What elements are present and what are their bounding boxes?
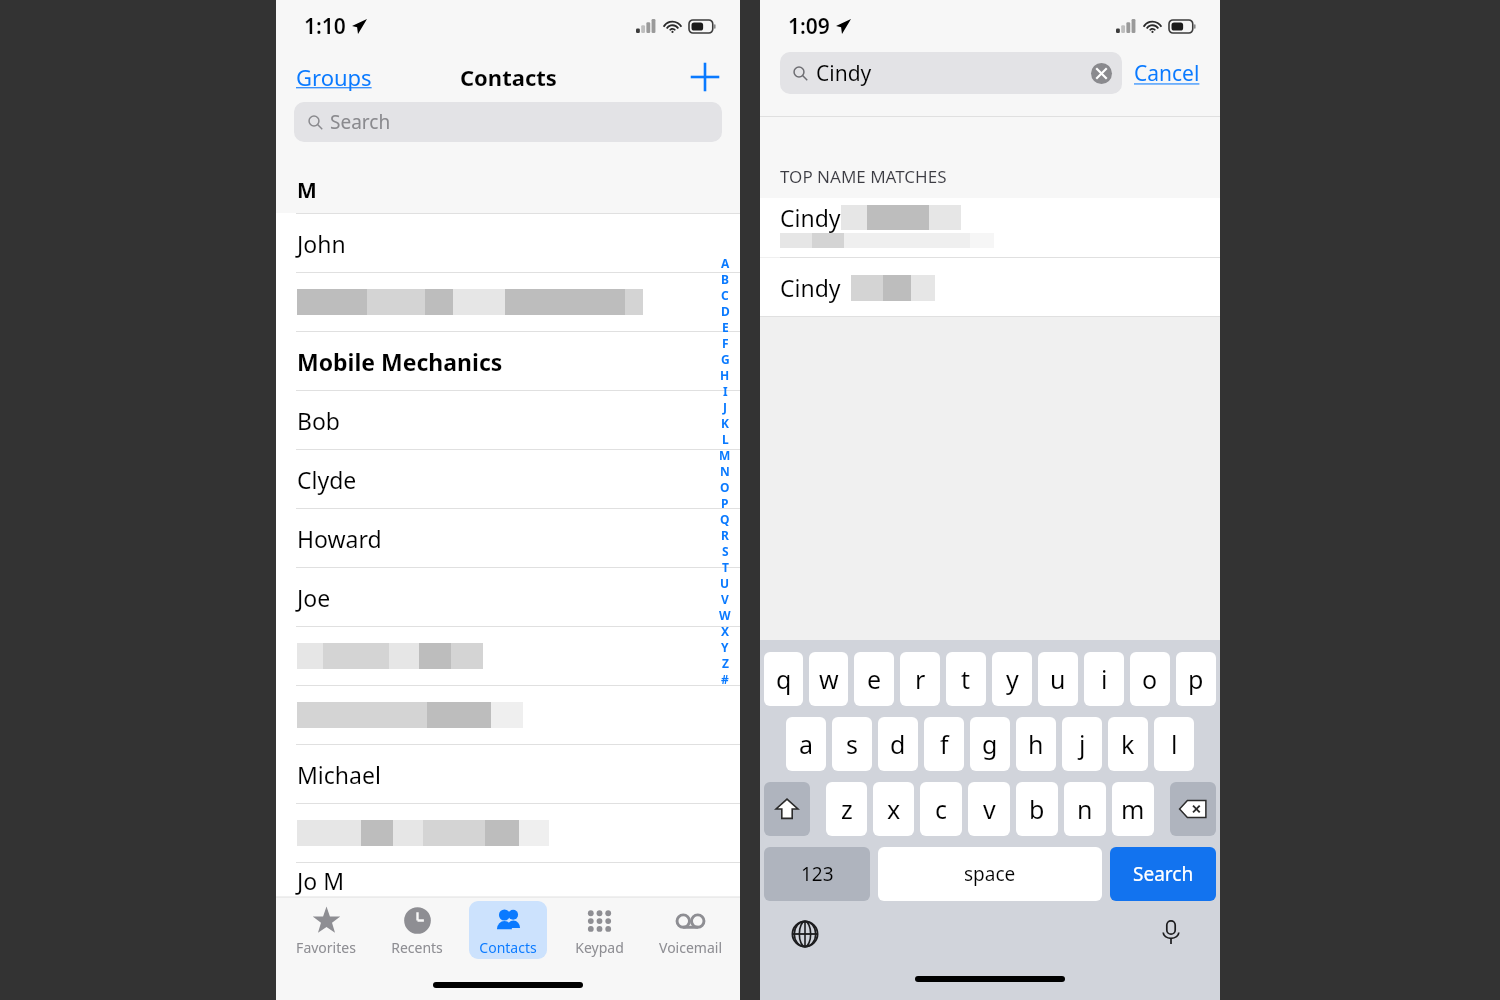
button[interactable]: r: [900, 652, 940, 706]
staticText: h: [1028, 727, 1044, 761]
button[interactable]: John: [276, 213, 740, 272]
button[interactable]: k: [1108, 717, 1148, 771]
staticText: T: [722, 559, 729, 575]
staticText: Joe: [297, 582, 331, 613]
staticText: H: [720, 367, 730, 383]
button[interactable]: m: [1112, 782, 1154, 836]
button[interactable]: u: [1038, 652, 1078, 706]
button[interactable]: Joe: [276, 567, 740, 626]
staticText: q: [776, 662, 792, 696]
button[interactable]: q: [764, 652, 803, 706]
button[interactable]: n: [1064, 782, 1106, 836]
button[interactable]: o: [1130, 652, 1170, 706]
button[interactable]: p: [1176, 652, 1216, 706]
staticText: o: [1142, 662, 1158, 696]
staticText: l: [1171, 727, 1178, 761]
staticText: Recents: [391, 938, 443, 957]
staticText: N: [720, 463, 730, 479]
staticText: z: [841, 792, 853, 826]
staticText: m: [1121, 792, 1145, 826]
button[interactable]: Cindy: [780, 52, 1122, 94]
button[interactable]: b: [1016, 782, 1058, 836]
button[interactable]: Add contact: [688, 60, 722, 94]
button[interactable]: x: [873, 782, 914, 836]
staticText: a: [799, 727, 814, 761]
button[interactable]: Clyde: [276, 449, 740, 508]
button[interactable]: Search: [294, 102, 722, 142]
staticText: C: [721, 287, 729, 303]
button[interactable]: Recents: [376, 897, 458, 963]
button[interactable]: a: [786, 717, 826, 771]
button[interactable]: Cancel: [1122, 55, 1200, 92]
staticText: TOP NAME MATCHES: [780, 165, 947, 188]
button[interactable]: z: [826, 782, 867, 836]
staticText: p: [1188, 662, 1204, 696]
button[interactable]: g: [970, 717, 1010, 771]
staticText: v: [983, 792, 996, 826]
button[interactable]: Jo M: [276, 862, 740, 897]
staticText: B: [721, 271, 729, 287]
staticText: #: [721, 671, 729, 687]
staticText: S: [722, 543, 729, 559]
button[interactable]: f: [924, 717, 964, 771]
button[interactable]: i: [1084, 652, 1124, 706]
staticText: r: [915, 662, 926, 696]
button[interactable]: Mobile Mechanics: [276, 331, 740, 390]
staticText: k: [1121, 727, 1135, 761]
button[interactable]: [276, 626, 740, 685]
button[interactable]: [276, 685, 740, 744]
button[interactable]: v: [968, 782, 1010, 836]
button[interactable]: [276, 272, 740, 331]
button[interactable]: Cindy: [760, 258, 1220, 316]
button[interactable]: Clear text: [1091, 63, 1112, 84]
button[interactable]: Favorites: [285, 897, 367, 963]
staticText: Favorites: [296, 938, 356, 957]
staticText: n: [1077, 792, 1093, 826]
button[interactable]: l: [1154, 717, 1194, 771]
staticText: V: [721, 591, 729, 607]
button[interactable]: Search: [1110, 847, 1216, 901]
button[interactable]: Backspace: [1170, 782, 1216, 836]
staticText: j: [1079, 727, 1086, 761]
button[interactable]: t: [946, 652, 986, 706]
button[interactable]: Shift: [764, 782, 810, 836]
staticText: Jo M: [297, 865, 345, 896]
staticText: E: [722, 319, 729, 335]
button[interactable]: Alphabet index: [716, 255, 734, 687]
staticText: Howard: [297, 523, 382, 554]
button[interactable]: d: [878, 717, 918, 771]
button[interactable]: Contacts: [467, 897, 549, 963]
button[interactable]: 123: [764, 847, 870, 901]
staticText: X: [721, 623, 730, 639]
button[interactable]: Howard: [276, 508, 740, 567]
button[interactable]: Voicemail: [649, 897, 731, 963]
button[interactable]: Keypad: [558, 897, 640, 963]
button[interactable]: Cindy: [760, 198, 1220, 257]
staticText: W: [719, 607, 731, 623]
button[interactable]: Groups: [292, 58, 376, 96]
staticText: y: [1006, 662, 1019, 696]
staticText: u: [1050, 662, 1066, 696]
button[interactable]: Michael: [276, 744, 740, 803]
button[interactable]: Dictation: [1156, 917, 1186, 947]
button[interactable]: w: [809, 652, 848, 706]
button[interactable]: Switch keyboard language: [790, 919, 820, 949]
button[interactable]: Bob: [276, 390, 740, 449]
button[interactable]: [276, 803, 740, 862]
button[interactable]: e: [854, 652, 894, 706]
staticText: John: [297, 228, 346, 259]
staticText: M: [297, 176, 317, 205]
button[interactable]: y: [992, 652, 1032, 706]
staticText: Keypad: [575, 938, 624, 957]
button[interactable]: c: [920, 782, 962, 836]
button[interactable]: j: [1062, 717, 1102, 771]
staticText: 1:10: [304, 12, 346, 41]
staticText: Z: [722, 655, 729, 671]
staticText: Contacts: [460, 62, 557, 92]
staticText: Cindy: [780, 272, 841, 303]
staticText: i: [1101, 662, 1108, 696]
button[interactable]: space: [878, 847, 1102, 901]
staticText: g: [982, 727, 998, 761]
button[interactable]: s: [832, 717, 872, 771]
button[interactable]: h: [1016, 717, 1056, 771]
